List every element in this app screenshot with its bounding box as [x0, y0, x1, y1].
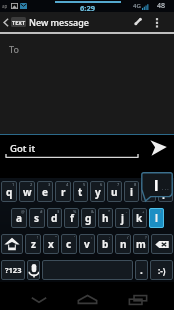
button[interactable]: t: [73, 181, 88, 202]
staticText: b: [102, 237, 109, 251]
staticText: c: [66, 237, 72, 251]
staticText: ?123: [5, 265, 22, 275]
staticText: u: [111, 185, 118, 199]
button[interactable]: b: [97, 234, 113, 254]
button[interactable]: n: [115, 234, 131, 254]
button[interactable]: x: [43, 234, 59, 254]
staticText: d: [51, 211, 58, 225]
staticText: !: [37, 235, 39, 240]
staticText: 7: [117, 182, 120, 187]
staticText: 3: [48, 182, 51, 187]
button[interactable]: j: [115, 208, 130, 228]
staticText: y: [95, 185, 101, 199]
staticText: *: [108, 209, 111, 214]
staticText: :: [91, 235, 93, 240]
button[interactable]: Hide keyboard: [18, 289, 59, 310]
staticText: l: [154, 175, 159, 195]
button[interactable]: p: [158, 181, 173, 202]
staticText: ;: [109, 235, 111, 240]
staticText: · · ·: [162, 186, 169, 193]
button[interactable]: a: [11, 208, 27, 228]
staticText: 6:29: [80, 3, 95, 13]
button[interactable]: .: [135, 260, 148, 280]
staticText: 8: [134, 182, 137, 187]
staticText: -: [126, 209, 128, 214]
button[interactable]: r: [55, 181, 71, 202]
button[interactable]: i: [124, 181, 139, 202]
button[interactable]: w: [19, 181, 35, 202]
button[interactable]: o: [141, 181, 156, 202]
staticText: p: [162, 185, 169, 199]
button[interactable]: u: [107, 181, 122, 202]
staticText: TEXT: [12, 19, 26, 26]
staticText: r: [61, 185, 66, 199]
button[interactable]: h: [98, 208, 113, 228]
staticText: 4G: [133, 2, 141, 10]
button[interactable]: l: [149, 208, 164, 228]
staticText: e: [42, 185, 48, 199]
staticText: @: [21, 209, 25, 214]
button[interactable]: z: [25, 234, 41, 254]
staticText: x: [48, 237, 54, 251]
staticText: q: [6, 185, 13, 199]
staticText: ": [55, 235, 57, 240]
staticText: l: [155, 211, 158, 225]
button[interactable]: d: [47, 208, 62, 228]
staticText: app: [2, 3, 9, 10]
button[interactable]: y: [90, 181, 105, 202]
staticText: g: [85, 211, 92, 225]
staticText: 1: [12, 182, 15, 187]
staticText: v: [84, 237, 90, 251]
staticText: (: [160, 209, 162, 214]
staticText: 2: [30, 182, 33, 187]
button[interactable]: [42, 260, 133, 280]
staticText: +: [142, 209, 145, 214]
button[interactable]: g: [81, 208, 96, 228]
button[interactable]: [27, 260, 40, 280]
staticText: :-): [158, 265, 166, 276]
staticText: i: [130, 185, 133, 199]
staticText: o: [145, 185, 152, 199]
button[interactable]: s: [29, 208, 45, 228]
staticText: 48: [157, 1, 166, 11]
button[interactable]: q: [1, 181, 17, 202]
staticText: $: [57, 209, 60, 214]
staticText: #: [40, 209, 43, 214]
button[interactable]: More options: [147, 12, 166, 32]
staticText: a: [16, 211, 22, 225]
staticText: 5: [83, 182, 86, 187]
staticText: m: [136, 237, 146, 251]
staticText: j: [121, 211, 124, 225]
button[interactable]: c: [61, 234, 77, 254]
staticText: 6: [100, 182, 103, 187]
button[interactable]: Send: [142, 134, 174, 162]
button[interactable]: Attach: [128, 12, 147, 32]
button[interactable]: Home: [67, 289, 108, 310]
staticText: z: [31, 237, 36, 251]
button[interactable]: v: [79, 234, 95, 254]
staticText: /: [127, 235, 129, 240]
button[interactable]: Recent apps: [117, 289, 158, 310]
staticText: k: [136, 211, 143, 225]
button[interactable]: m: [133, 234, 149, 254]
staticText: s: [34, 211, 40, 225]
staticText: ?: [145, 235, 147, 240]
staticText: t: [78, 185, 83, 199]
staticText: To: [9, 43, 19, 55]
staticText: &: [91, 209, 94, 214]
staticText: New message: [29, 16, 89, 28]
button[interactable]: k: [132, 208, 147, 228]
button[interactable]: ?123: [1, 260, 25, 280]
button[interactable]: [151, 234, 173, 254]
button[interactable]: f: [64, 208, 79, 228]
staticText: w: [23, 185, 32, 199]
staticText: f: [70, 211, 74, 225]
button[interactable]: [1, 234, 23, 254]
staticText: %: [73, 209, 77, 214]
button[interactable]: e: [37, 181, 53, 202]
staticText: 4: [66, 182, 69, 187]
staticText: Got it: [10, 142, 36, 155]
button[interactable]: :-): [150, 260, 173, 280]
staticText: ': [74, 235, 75, 240]
